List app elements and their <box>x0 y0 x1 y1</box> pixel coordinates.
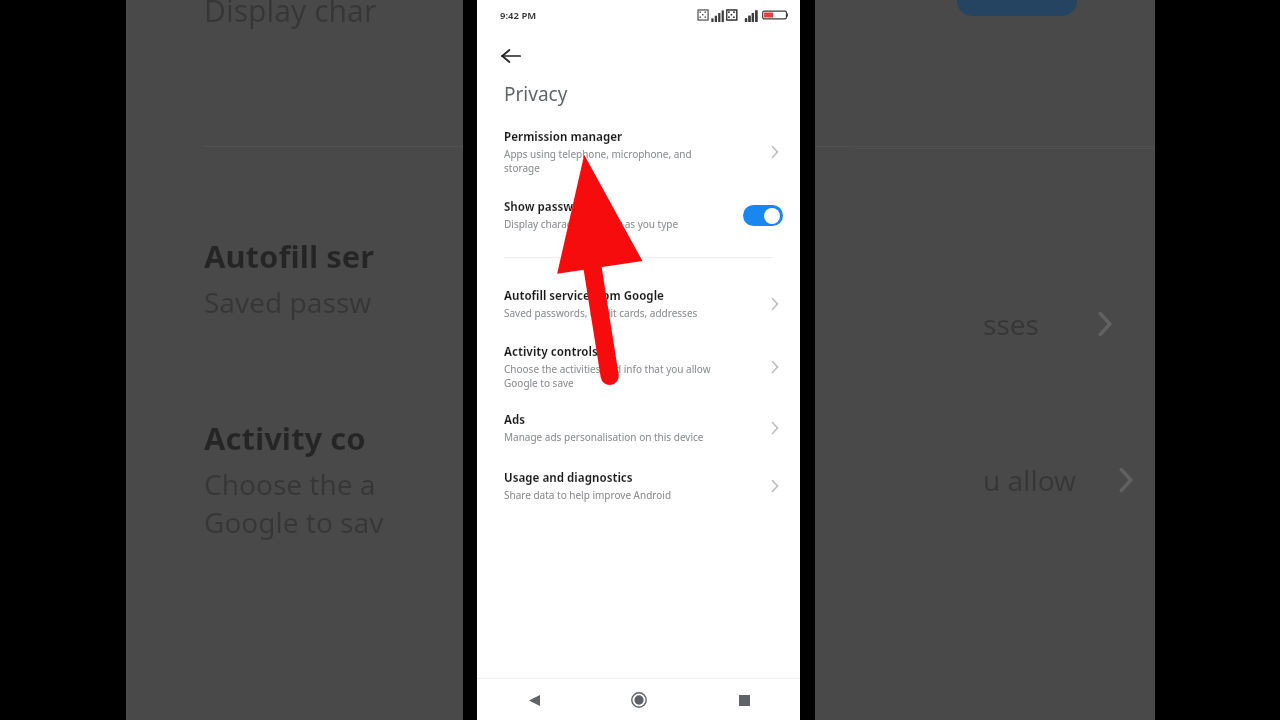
staticText: Permission manager <box>504 129 623 145</box>
staticText: Saved passw <box>204 283 372 321</box>
staticText: Show password <box>504 199 593 215</box>
staticText: Privacy <box>504 81 568 107</box>
staticText: Autofill ser <box>204 235 375 277</box>
staticText: Saved passwords, credit cards, addresses <box>504 306 698 320</box>
staticText: 9:42 PM <box>500 9 537 22</box>
staticText: Display characters briefly as you type <box>504 217 679 231</box>
button[interactable]: Recent apps <box>727 683 761 717</box>
button[interactable]: Permission manager <box>477 129 800 175</box>
staticText: Autofill service from Google <box>504 288 664 304</box>
button[interactable]: Ads <box>477 412 800 444</box>
staticText: u allow <box>983 461 1077 499</box>
staticText: Choose the activities and info that you … <box>504 362 711 390</box>
button[interactable]: Activity controls <box>477 344 800 390</box>
button[interactable]: Home <box>622 683 656 717</box>
staticText: sses <box>983 305 1040 343</box>
staticText: Ads <box>504 412 525 428</box>
staticText: Choose the a <box>204 465 376 503</box>
staticText: Share data to help improve Android <box>504 488 672 502</box>
button[interactable]: Back <box>491 36 531 76</box>
button[interactable]: Usage and diagnostics <box>477 470 800 502</box>
button[interactable]: Show password <box>477 199 800 231</box>
staticText: Display char <box>204 0 377 31</box>
staticText: Apps using telephone, microphone, and st… <box>504 147 692 175</box>
button[interactable]: Autofill service from Google <box>477 288 800 320</box>
staticText: Manage ads personalisation on this devic… <box>504 430 704 444</box>
button[interactable]: Back <box>517 683 551 717</box>
staticText: Activity co <box>204 417 366 459</box>
staticText: Usage and diagnostics <box>504 470 633 486</box>
staticText: Activity controls <box>504 344 598 360</box>
button[interactable]: Show password toggle <box>743 205 783 226</box>
staticText: Google to sav <box>204 503 384 541</box>
